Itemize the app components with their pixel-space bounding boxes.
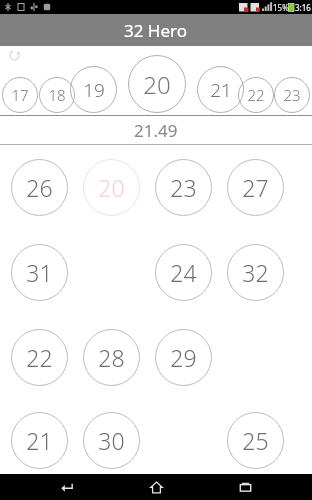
staticText: 18: [48, 85, 66, 105]
button[interactable]: 28: [83, 329, 140, 386]
staticText: 30: [98, 425, 125, 456]
staticText: 22: [26, 342, 53, 373]
button[interactable]: Back: [45, 474, 89, 500]
button[interactable]: 27: [227, 159, 284, 216]
staticText: 19: [83, 77, 105, 103]
other: Refresh: [9, 50, 20, 61]
staticText: 23: [170, 172, 197, 203]
button[interactable]: Recent apps: [223, 474, 267, 500]
button[interactable]: 23: [155, 159, 212, 216]
button[interactable]: 17: [2, 77, 38, 113]
staticText: 27: [242, 172, 269, 203]
button[interactable]: 20: [128, 55, 186, 113]
staticText: 20: [98, 172, 125, 203]
staticText: 21: [210, 77, 232, 103]
staticText: 20: [143, 68, 171, 101]
button[interactable]: 24: [155, 244, 212, 301]
staticText: 32 Hero: [124, 19, 188, 42]
button[interactable]: 23: [274, 77, 310, 113]
staticText: 3:16: [295, 2, 311, 13]
button[interactable]: 25: [227, 412, 284, 469]
button[interactable]: 26: [11, 159, 68, 216]
button[interactable]: 18: [39, 77, 75, 113]
staticText: 32: [242, 257, 269, 288]
button[interactable]: 29: [155, 329, 212, 386]
staticText: 21: [26, 425, 53, 456]
staticText: 22: [247, 85, 265, 105]
staticText: 23: [283, 85, 301, 105]
button[interactable]: Home: [134, 474, 178, 500]
staticText: 15%: [273, 2, 289, 13]
button[interactable]: 20: [83, 159, 140, 216]
staticText: 24: [170, 257, 197, 288]
button[interactable]: 31: [11, 244, 68, 301]
staticText: 17: [11, 85, 29, 105]
button[interactable]: 22: [238, 77, 274, 113]
button[interactable]: 21: [197, 66, 244, 113]
staticText: 25: [242, 425, 269, 456]
button[interactable]: 21: [11, 412, 68, 469]
button[interactable]: 32: [227, 244, 284, 301]
staticText: 31: [26, 257, 53, 288]
staticText: 28: [98, 342, 125, 373]
staticText: 21.49: [134, 119, 178, 142]
button[interactable]: 19: [70, 66, 117, 113]
button[interactable]: 22: [11, 329, 68, 386]
staticText: 26: [26, 172, 53, 203]
button[interactable]: 30: [83, 412, 140, 469]
staticText: 29: [170, 342, 197, 373]
